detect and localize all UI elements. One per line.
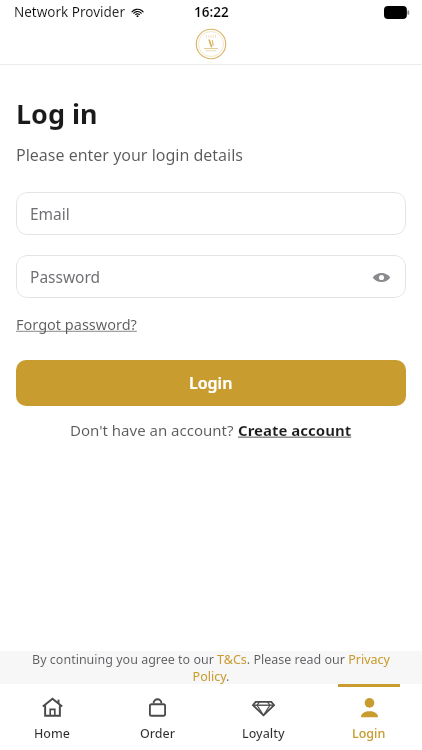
button[interactable]: Password: [16, 255, 406, 298]
button[interactable]: Forgot password?: [16, 314, 137, 334]
staticText: Forgot password?: [16, 314, 137, 334]
button[interactable]: Login: [316, 684, 422, 750]
staticText: Email: [30, 203, 70, 224]
staticText: Please enter your login details: [16, 144, 243, 166]
button[interactable]: Loyalty: [210, 684, 316, 750]
staticText: Network Provider: [14, 3, 126, 21]
staticText: Password: [30, 266, 101, 287]
staticText: Login: [189, 372, 233, 394]
button[interactable]: Login: [16, 360, 406, 406]
staticText: Loyalty: [242, 725, 285, 742]
button[interactable]: Email: [16, 192, 406, 235]
staticText: Create account: [238, 420, 352, 440]
staticText: Log in: [16, 95, 98, 132]
button[interactable]: Show password: [368, 264, 394, 290]
staticText: Login: [352, 725, 386, 742]
staticText: 16:22: [194, 3, 229, 21]
staticText: Don't have an account?: [70, 420, 238, 440]
staticText: Order: [140, 725, 176, 742]
button[interactable]: Create account: [238, 420, 352, 440]
staticText: Home: [34, 725, 71, 742]
button[interactable]: Home: [0, 684, 105, 750]
staticText: By continuing you agree to our T&Cs. Ple…: [14, 651, 408, 684]
button[interactable]: Order: [105, 684, 210, 750]
